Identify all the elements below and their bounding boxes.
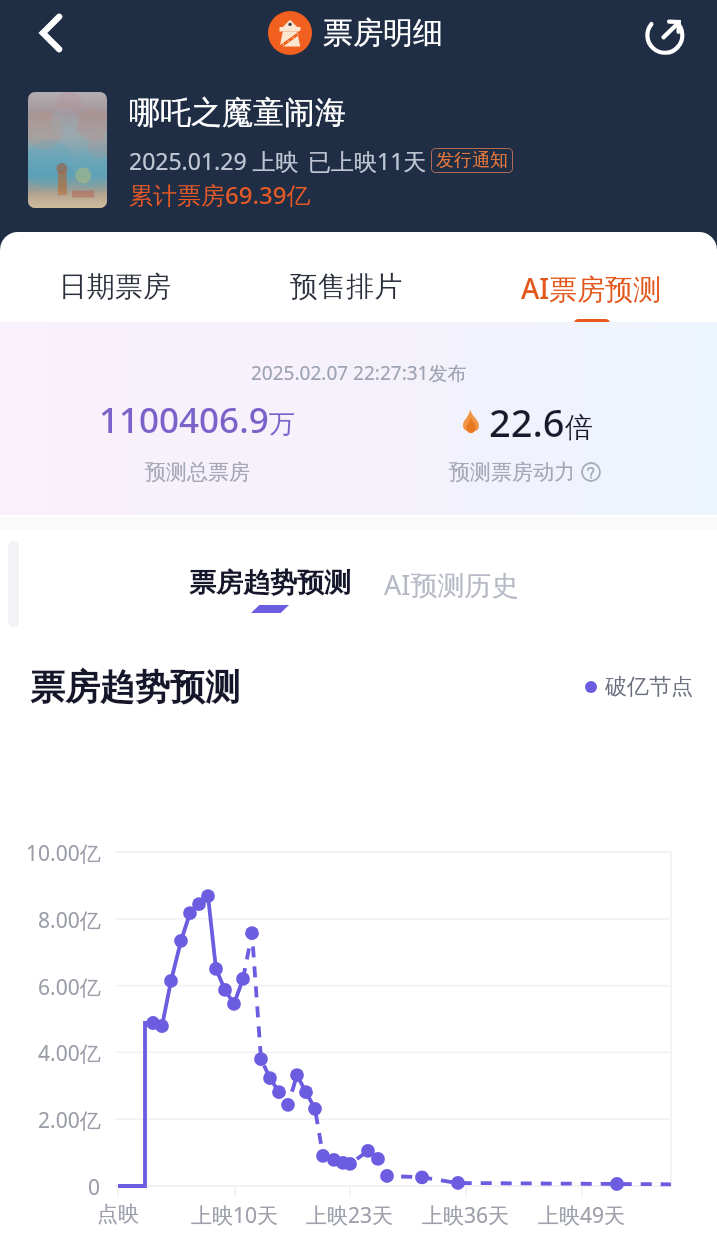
button[interactable]: Movie poster <box>28 92 107 208</box>
staticText: AI票房预测 <box>521 269 662 307</box>
staticText: 日期票房 <box>59 269 171 304</box>
button[interactable]: Back <box>22 4 80 62</box>
button[interactable]: Share <box>641 8 691 58</box>
staticText: 倍 <box>565 410 593 445</box>
staticText: 2025.02.07 22:27:31发布 <box>251 360 467 386</box>
staticText: 上映23天 <box>306 1201 394 1230</box>
button[interactable]: 预售排片 <box>256 232 436 328</box>
staticText: 2025.01.29 上映 <box>129 145 299 176</box>
button[interactable]: 日期票房 <box>25 232 205 328</box>
staticText: 10.00亿 <box>26 839 101 868</box>
staticText: 万 <box>269 408 295 441</box>
staticText: AI预测历史 <box>384 566 519 603</box>
staticText: 预测票房动力 <box>449 459 575 485</box>
staticText: 票房明细 <box>323 14 443 52</box>
staticText: 8.00亿 <box>38 906 101 935</box>
staticText: 22.6 <box>489 396 565 448</box>
button[interactable]: Help <box>581 462 601 482</box>
staticText: 发行通知 <box>436 149 508 172</box>
staticText: 预售排片 <box>290 269 402 304</box>
staticText: 票房趋势预测 <box>30 665 240 709</box>
button[interactable]: 票房趋势预测 <box>189 566 351 613</box>
staticText: 1100406.9 <box>99 396 269 444</box>
staticText: 点映 <box>97 1201 139 1227</box>
staticText: 累计票房69.39亿 <box>129 178 311 211</box>
staticText: 0 <box>88 1173 101 1202</box>
staticText: 4.00亿 <box>38 1039 101 1068</box>
staticText: 上映10天 <box>191 1201 279 1230</box>
staticText: 票房趋势预测 <box>189 566 351 600</box>
staticText: 哪吒之魔童闹海 <box>129 93 346 132</box>
staticText: 已上映11天 <box>308 145 427 176</box>
staticText: 6.00亿 <box>38 973 101 1002</box>
staticText: 2.00亿 <box>38 1106 101 1135</box>
staticText: 上映36天 <box>422 1201 510 1230</box>
staticText: 预测总票房 <box>145 459 250 485</box>
staticText: 破亿节点 <box>605 673 693 701</box>
button[interactable]: AI票房预测 <box>501 232 681 328</box>
button[interactable]: 发行通知 <box>436 149 508 172</box>
staticText: 上映49天 <box>538 1201 626 1230</box>
button[interactable]: AI预测历史 <box>384 566 519 603</box>
